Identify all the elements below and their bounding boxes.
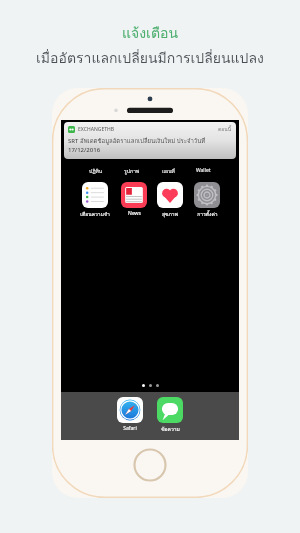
staticText: เมื่ออัตราแลกเปลี่ยนมีการเปลี่ยนแปลง	[36, 47, 264, 69]
staticText: Wallet	[196, 167, 211, 174]
button[interactable]: ข้อความ	[157, 397, 183, 433]
button[interactable]: EXCHANGETHB	[64, 122, 236, 159]
staticText: SRT อัพเดตข้อมูลอัตราแลกเปลี่ยนเงินใหม่ …	[68, 136, 206, 146]
button[interactable]: Safari	[117, 397, 143, 432]
staticText: News	[128, 210, 141, 217]
staticText: รูปภาพ	[124, 167, 140, 175]
staticText: ปฏิทิน	[89, 167, 103, 175]
staticText: แผนที่	[162, 167, 175, 175]
staticText: 17/12/2016	[68, 146, 101, 154]
staticText: การตั้งค่า	[197, 210, 218, 218]
staticText: Safari	[123, 425, 137, 432]
staticText: เตือนความจำ	[80, 210, 110, 218]
button[interactable]: News	[121, 182, 147, 217]
staticText: ข้อความ	[161, 425, 180, 433]
staticText: สุขภาพ	[162, 210, 178, 218]
button[interactable]: Home	[133, 448, 167, 482]
staticText: ตอนนี้	[218, 125, 232, 133]
button[interactable]: สุขภาพ	[157, 182, 183, 218]
staticText: EXCHANGETHB	[78, 126, 115, 133]
staticText: แจ้งเตือน	[122, 22, 178, 44]
button[interactable]: เตือนความจำ	[80, 182, 110, 218]
button[interactable]: การตั้งค่า	[194, 182, 220, 218]
